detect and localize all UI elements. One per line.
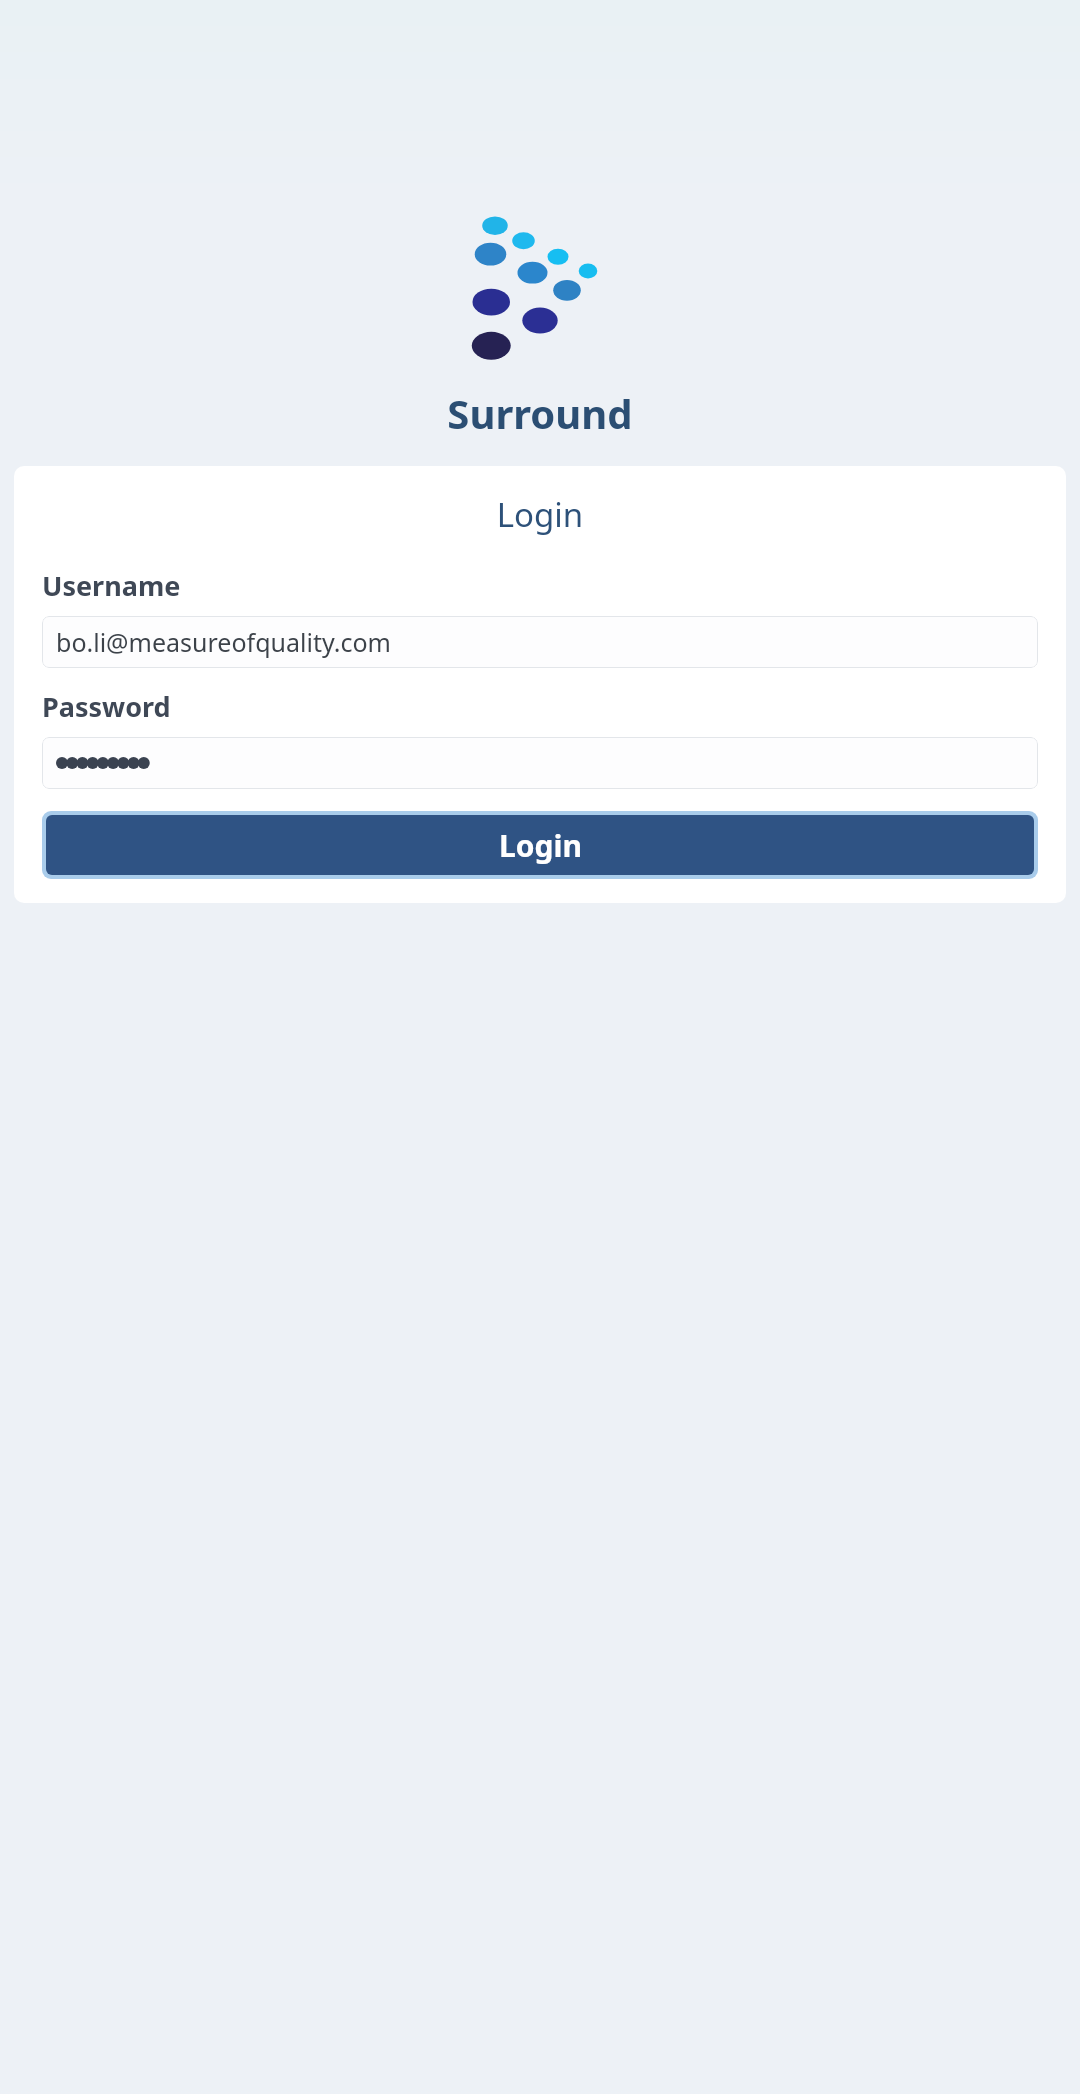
staticText: Username bbox=[42, 567, 181, 604]
staticText: Login bbox=[499, 825, 582, 866]
staticText: Login bbox=[42, 492, 1038, 537]
button[interactable]: bo.li@measureofquality.com bbox=[42, 616, 1038, 668]
button[interactable]: Login bbox=[42, 811, 1038, 879]
button[interactable] bbox=[42, 737, 1038, 789]
staticText: Password bbox=[42, 688, 171, 725]
staticText: bo.li@measureofquality.com bbox=[56, 625, 391, 659]
staticText: Surround bbox=[447, 386, 633, 440]
